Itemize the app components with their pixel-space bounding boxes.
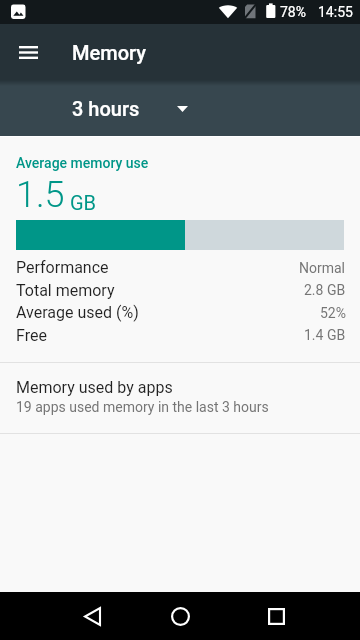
button[interactable]: 3 hours xyxy=(64,89,196,128)
button[interactable]: Memory used by apps xyxy=(0,363,360,433)
staticText: 3 hours xyxy=(72,97,140,120)
staticText: Memory xyxy=(72,41,146,64)
staticText: 14:55 xyxy=(318,4,353,20)
staticText: Performance xyxy=(16,258,109,277)
staticText: Memory used by apps xyxy=(16,378,173,397)
button[interactable]: Back xyxy=(68,592,116,640)
button[interactable]: Home xyxy=(156,592,204,640)
staticText: 1.5 xyxy=(16,174,65,216)
staticText: Normal xyxy=(299,260,346,276)
staticText: GB xyxy=(70,191,97,214)
staticText: Average used (%) xyxy=(16,303,139,322)
staticText: 78% xyxy=(280,4,306,20)
staticText: 19 apps used memory in the last 3 hours xyxy=(16,399,269,415)
staticText: 2.8 GB xyxy=(304,282,346,298)
button[interactable]: Recent apps xyxy=(252,592,300,640)
staticText: Average memory use xyxy=(16,155,149,171)
staticText: Free xyxy=(16,326,47,345)
staticText: Total memory xyxy=(16,281,115,300)
staticText: 52% xyxy=(320,305,346,321)
staticText: 1.4 GB xyxy=(304,327,346,343)
button[interactable]: Open navigation drawer xyxy=(0,24,56,80)
